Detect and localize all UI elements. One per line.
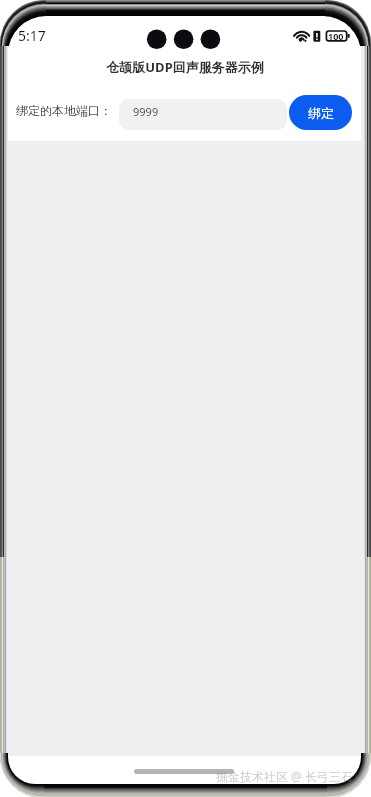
staticText: 绑定	[308, 105, 334, 121]
staticText: 9999	[133, 104, 159, 119]
button[interactable]: 绑定	[289, 95, 352, 130]
staticText: 100	[328, 30, 344, 42]
staticText: 5:17	[18, 26, 46, 45]
button[interactable]: 9999	[119, 99, 287, 130]
staticText: 仓颉版UDP回声服务器示例	[106, 58, 264, 76]
staticText: 掘金技术社区 @ 长弓三石	[216, 768, 354, 784]
staticText: 绑定的本地端口：	[16, 103, 112, 118]
